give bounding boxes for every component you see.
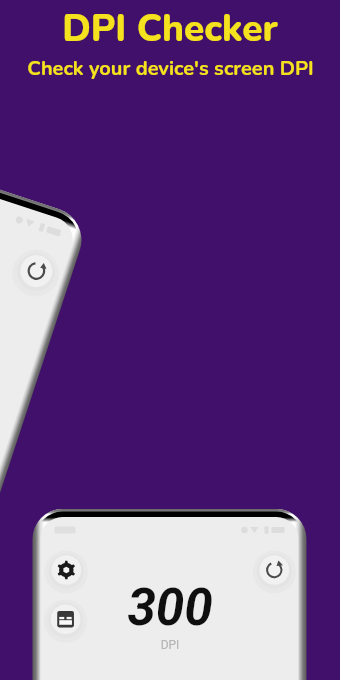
staticText: 300 [0, 578, 340, 680]
staticText: DPI [0, 638, 340, 680]
staticText: DPI Checker [62, 4, 278, 54]
staticText: Check your device's screen DPI [27, 55, 314, 82]
